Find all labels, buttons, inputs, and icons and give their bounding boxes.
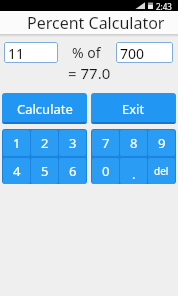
button[interactable]: 4	[3, 158, 30, 184]
button[interactable]: del	[148, 158, 175, 184]
button[interactable]: 3	[59, 130, 86, 156]
button[interactable]: 9	[148, 130, 175, 156]
staticText: 11	[8, 44, 25, 63]
staticText: .	[132, 165, 136, 183]
staticText: 5	[41, 162, 49, 180]
staticText: 3	[69, 134, 77, 152]
staticText: Percent Calculator	[27, 12, 165, 34]
button[interactable]: 6	[59, 158, 86, 184]
button[interactable]: 0	[92, 158, 119, 184]
button[interactable]: 7	[92, 130, 119, 156]
staticText: 9	[158, 134, 166, 152]
button[interactable]: Calculate	[2, 93, 87, 124]
button[interactable]: 2	[31, 130, 58, 156]
staticText: 6	[69, 162, 77, 180]
staticText: Exit	[122, 100, 145, 118]
staticText: 7	[102, 134, 110, 152]
button[interactable]: 8	[120, 130, 147, 156]
staticText: = 77.0	[68, 63, 111, 83]
button[interactable]: Exit	[91, 93, 176, 124]
staticText: 2	[41, 134, 49, 152]
button[interactable]: 11	[4, 42, 58, 63]
staticText: del	[154, 164, 169, 178]
staticText: Calculate	[17, 100, 73, 118]
button[interactable]: 1	[3, 130, 30, 156]
staticText: 4	[13, 162, 21, 180]
staticText: 700	[120, 44, 145, 63]
button[interactable]: .	[120, 158, 147, 184]
staticText: 1	[13, 134, 21, 152]
staticText: 2:43	[156, 1, 172, 12]
staticText: 8	[130, 134, 138, 152]
staticText: 0	[102, 162, 110, 180]
button[interactable]: 5	[31, 158, 58, 184]
button[interactable]: 700	[116, 42, 173, 63]
staticText: % of	[72, 43, 101, 62]
